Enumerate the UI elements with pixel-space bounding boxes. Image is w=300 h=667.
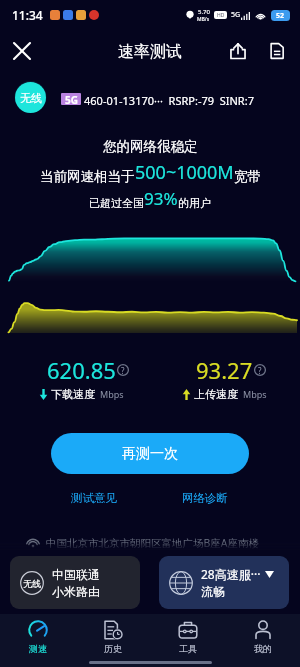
button[interactable]: Share [222,35,254,67]
staticText: 无线 [20,91,42,105]
staticText: Mbps [243,388,267,400]
staticText: ? [258,365,262,376]
staticText: 28高速服··· [201,566,261,582]
button[interactable]: Info [253,363,267,377]
button[interactable]: 28高速服··· [159,556,289,609]
staticText: 5G [65,93,78,105]
staticText: 再测一次 [122,445,178,463]
staticText: 无线 [23,578,41,589]
staticText: 5G [231,10,241,20]
staticText: 93.27 [196,355,253,385]
button[interactable]: 无线 [10,556,140,609]
button[interactable]: Report [261,35,293,67]
staticText: 620.85 [47,355,116,385]
button[interactable]: 测速 [0,614,75,660]
staticText: 工具 [179,643,197,654]
staticText: 当前网速相当于 [40,168,135,185]
staticText: 测试意见 [71,491,117,505]
staticText: 小米路由 [52,584,100,599]
staticText: Mbps [100,388,124,400]
staticText: 测速 [29,643,47,654]
staticText: 网络诊断 [182,491,228,505]
button[interactable]: 历史 [75,614,150,660]
button[interactable]: 再测一次 [51,433,249,474]
button[interactable]: 工具 [150,614,225,660]
staticText: 已超过全国 [89,196,144,210]
staticText: 流畅 [201,584,225,599]
staticText: 460-01-13170··· RSRP:-79 SINR:7 [84,93,254,108]
button[interactable]: 测试意见 [71,489,117,507]
staticText: 中国联通 [52,567,100,582]
staticText: 我的 [254,643,272,654]
staticText: 历史 [104,643,122,654]
staticText: 的用户 [178,196,211,210]
staticText: 500~1000M [135,160,234,185]
button[interactable]: 网络诊断 [182,489,228,507]
button[interactable]: Close [6,35,38,67]
staticText: HD [217,12,225,19]
staticText: 中国北京市北京市朝阳区富地广场B座A座南楼 [46,536,260,550]
staticText: 速率测试 [118,42,182,62]
staticText: 您的网络很稳定 [103,138,198,155]
staticText: 宽带 [234,168,261,185]
staticText: 52 [276,11,285,21]
staticText: 11:34 [12,7,43,23]
button[interactable]: Info [116,363,130,377]
staticText: 93% [144,187,178,210]
staticText: MB/s [197,16,210,23]
staticText: 下载速度 [51,387,95,401]
staticText: 5.70 [198,8,210,16]
staticText: ? [121,365,125,376]
staticText: 上传速度 [194,387,238,401]
button[interactable]: 我的 [225,614,300,660]
